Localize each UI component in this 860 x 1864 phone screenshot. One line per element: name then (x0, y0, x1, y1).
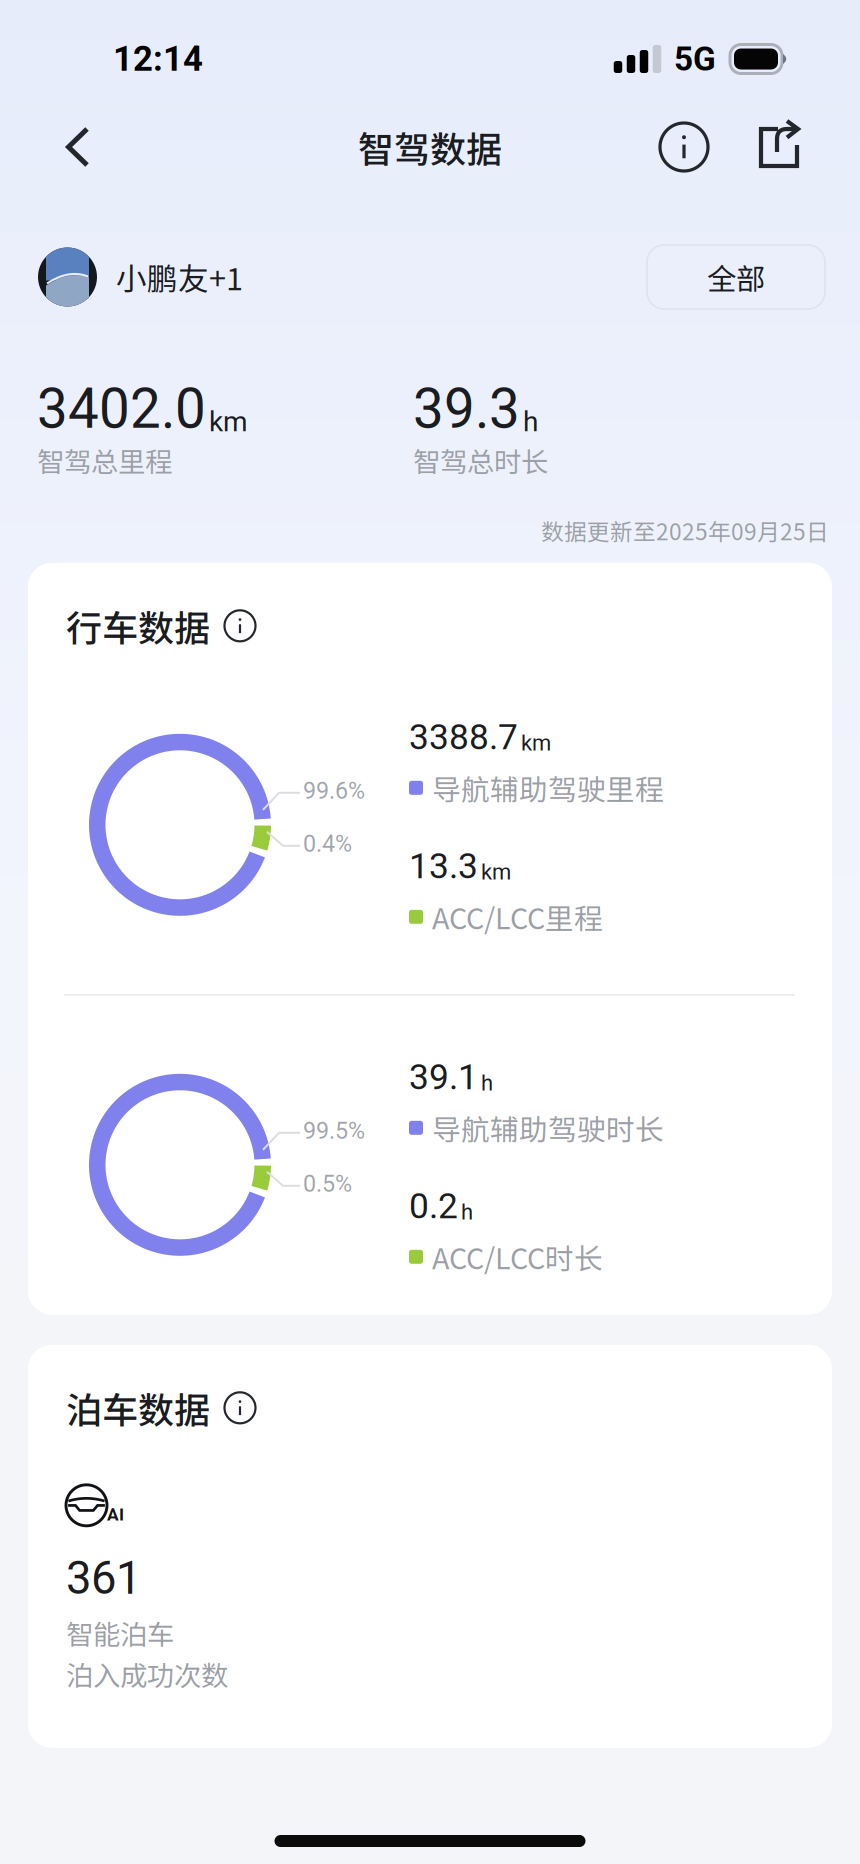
staticText: 99.6% (303, 777, 365, 804)
staticText: h (523, 405, 538, 438)
button[interactable]: 全部 (647, 245, 825, 309)
button[interactable]: 返回 (40, 109, 116, 185)
staticText: 0.4% (303, 830, 352, 857)
staticText: 智驾总里程 (37, 440, 172, 480)
staticText: 行车数据 (66, 600, 210, 652)
staticText: km (521, 730, 551, 756)
staticText: 0.5% (303, 1170, 352, 1197)
staticText: 39.1 (409, 1056, 478, 1098)
staticText: 智驾总时长 (413, 440, 548, 480)
button[interactable]: 说明 (223, 609, 257, 643)
staticText: 导航辅助驾驶时长 (432, 1107, 664, 1149)
staticText: 0.2 (409, 1185, 458, 1227)
staticText: 99.5% (303, 1117, 365, 1144)
staticText: 智能泊车 (66, 1613, 174, 1653)
staticText: ACC/LCC时长 (432, 1236, 603, 1278)
staticText: 小鹏友+1 (116, 255, 243, 299)
staticText: AI (107, 1504, 124, 1525)
staticText: 数据更新至2025年09月25日 (541, 514, 829, 547)
staticText: h (481, 1070, 493, 1096)
staticText: 3388.7 (409, 716, 518, 758)
staticText: 泊入成功次数 (66, 1654, 228, 1694)
staticText: km (209, 405, 248, 438)
button[interactable]: 说明 (646, 109, 722, 185)
staticText: 全部 (707, 256, 765, 298)
staticText: 39.3 (413, 377, 520, 441)
button[interactable]: 分享 (740, 109, 816, 185)
staticText: 智驾数据 (358, 121, 502, 173)
staticText: 3402.0 (37, 377, 206, 441)
staticText: 导航辅助驾驶里程 (432, 767, 664, 809)
staticText: h (461, 1199, 473, 1225)
staticText: 5G (674, 39, 716, 79)
staticText: 12:14 (113, 39, 203, 79)
button[interactable]: 说明 (223, 1391, 257, 1425)
staticText: 361 (66, 1552, 141, 1605)
staticText: km (481, 859, 511, 885)
staticText: 泊车数据 (66, 1382, 210, 1434)
staticText: ACC/LCC里程 (432, 896, 603, 938)
staticText: 13.3 (409, 845, 478, 887)
